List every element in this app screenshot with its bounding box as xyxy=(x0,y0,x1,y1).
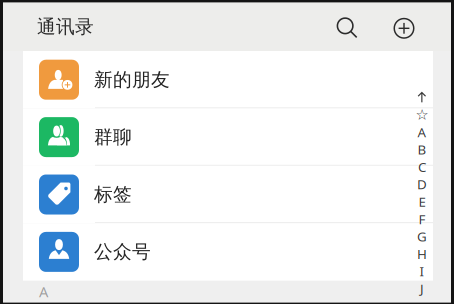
staticText: B xyxy=(417,140,426,158)
staticText: D xyxy=(417,175,427,193)
staticText: A xyxy=(39,282,48,301)
button[interactable]: 公众号 xyxy=(23,223,433,281)
button[interactable]: Alphabet index xyxy=(415,88,429,297)
staticText: 标签 xyxy=(94,183,132,206)
button[interactable]: Search xyxy=(328,7,366,47)
staticText: C xyxy=(418,158,426,176)
staticText: H xyxy=(417,245,427,263)
staticText: 通讯录 xyxy=(37,15,94,38)
button[interactable]: 群聊 xyxy=(23,108,433,166)
staticText: G xyxy=(417,227,427,245)
staticText: 公众号 xyxy=(94,240,151,263)
staticText: E xyxy=(418,193,425,210)
staticText: 新的朋友 xyxy=(94,68,170,91)
button[interactable]: Add xyxy=(385,7,423,47)
staticText: I xyxy=(419,262,424,280)
button[interactable]: 标签 xyxy=(23,166,433,223)
button[interactable]: 新的朋友 xyxy=(23,51,433,108)
staticText: ☆ xyxy=(415,106,428,123)
staticText: A xyxy=(417,123,426,141)
staticText: F xyxy=(418,210,425,228)
staticText: 群聊 xyxy=(94,126,132,148)
staticText: J xyxy=(420,280,424,297)
